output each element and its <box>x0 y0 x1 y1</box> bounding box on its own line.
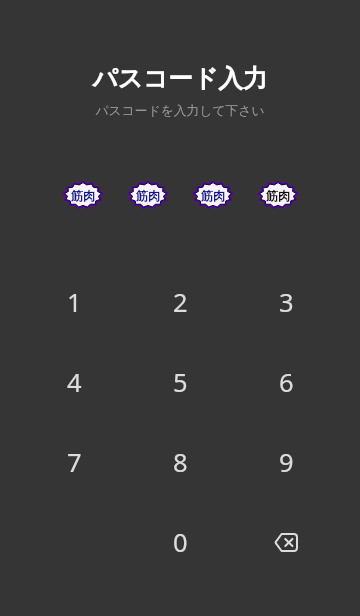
staticText: 3 <box>279 285 294 320</box>
staticText: 筋肉 <box>71 188 95 203</box>
button[interactable]: 6 <box>233 342 339 422</box>
button[interactable]: 9 <box>233 422 339 502</box>
button[interactable]: 4 <box>21 342 127 422</box>
staticText: 筋肉 <box>201 188 225 203</box>
button[interactable]: Backspace <box>233 502 339 582</box>
staticText: 4 <box>67 365 82 400</box>
staticText: 5 <box>173 365 188 400</box>
staticText: 1 <box>67 285 82 320</box>
staticText: 筋肉 <box>266 188 290 203</box>
button[interactable]: 3 <box>233 262 339 342</box>
staticText: パスコード入力 <box>92 63 268 94</box>
staticText: 筋肉 <box>136 188 160 203</box>
staticText: 2 <box>173 285 188 320</box>
button[interactable]: 0 <box>127 502 233 582</box>
button[interactable]: 8 <box>127 422 233 502</box>
staticText: 9 <box>279 445 294 480</box>
button[interactable]: 5 <box>127 342 233 422</box>
staticText: 8 <box>173 445 188 480</box>
button[interactable]: 1 <box>21 262 127 342</box>
staticText: 0 <box>173 525 188 560</box>
staticText: パスコードを入力して下さい <box>95 103 265 119</box>
staticText: 6 <box>279 365 294 400</box>
button[interactable]: 7 <box>21 422 127 502</box>
button[interactable]: 2 <box>127 262 233 342</box>
staticText: 7 <box>67 445 82 480</box>
